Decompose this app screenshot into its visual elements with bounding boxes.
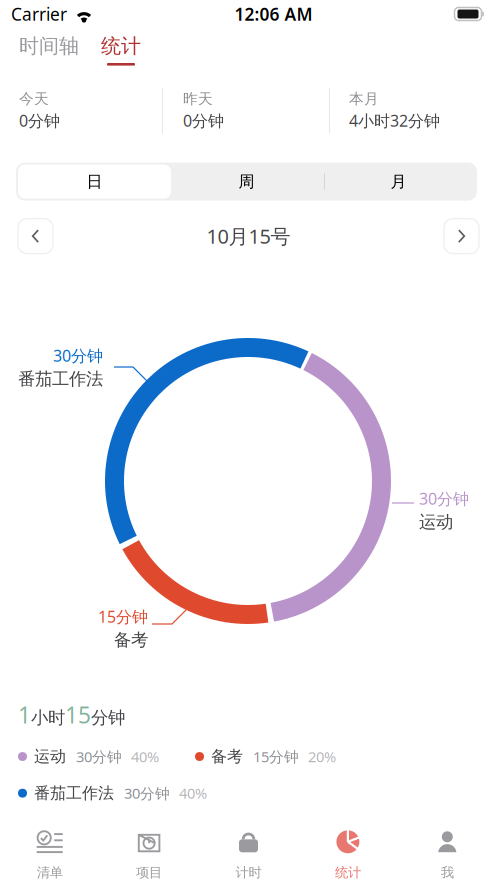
staticText: 清单	[37, 864, 63, 881]
button[interactable]: 统计	[101, 34, 141, 66]
staticText: 4小时32分钟	[349, 110, 440, 131]
button[interactable]: 月	[322, 165, 475, 199]
staticText: 15分钟	[98, 606, 148, 627]
staticText: 我	[441, 864, 454, 881]
staticText: 本月	[349, 90, 379, 108]
staticText: 运动	[419, 511, 453, 532]
staticText: 月	[390, 172, 406, 191]
button[interactable]: 日	[18, 165, 171, 199]
staticText: 0分钟	[183, 110, 224, 131]
staticText: 今天	[19, 90, 49, 108]
staticText: 20%	[308, 747, 336, 766]
staticText: 30分钟	[53, 345, 103, 366]
staticText: 30分钟	[124, 783, 170, 803]
staticText: 番茄工作法	[34, 783, 114, 803]
staticText: Carrier	[11, 2, 67, 25]
button[interactable]: 时间轴	[19, 34, 101, 58]
staticText: 分钟	[91, 707, 125, 728]
staticText: 小时	[31, 707, 65, 728]
button[interactable]: 统计	[298, 815, 398, 883]
staticText: 30分钟	[76, 747, 122, 766]
button[interactable]: 清单	[0, 815, 99, 883]
staticText: 计时	[235, 864, 261, 881]
staticText: 15	[65, 700, 91, 730]
button[interactable]: 项目	[99, 815, 199, 883]
staticText: 10月15号	[206, 223, 290, 249]
button[interactable]: 下一天	[444, 219, 479, 254]
staticText: 备考	[114, 629, 148, 650]
staticText: 40%	[131, 747, 159, 766]
staticText: 15分钟	[253, 747, 299, 766]
staticText: 0分钟	[19, 110, 60, 131]
button[interactable]: 计时	[199, 815, 298, 883]
button[interactable]: 上一天	[18, 219, 53, 254]
staticText: 项目	[136, 864, 162, 881]
button[interactable]: 周	[171, 165, 322, 199]
staticText: 1	[18, 700, 31, 730]
staticText: 日	[86, 172, 102, 191]
staticText: 番茄工作法	[18, 368, 103, 389]
staticText: 周	[238, 172, 254, 191]
staticText: 40%	[179, 783, 207, 803]
staticText: 备考	[211, 747, 243, 766]
staticText: 时间轴	[19, 34, 79, 58]
button[interactable]: 我	[398, 815, 497, 883]
staticText: 30分钟	[419, 488, 469, 509]
staticText: 12:06 AM	[234, 2, 312, 25]
staticText: 统计	[335, 864, 361, 881]
staticText: 统计	[101, 34, 141, 58]
staticText: 运动	[34, 747, 66, 766]
staticText: 昨天	[183, 90, 213, 108]
